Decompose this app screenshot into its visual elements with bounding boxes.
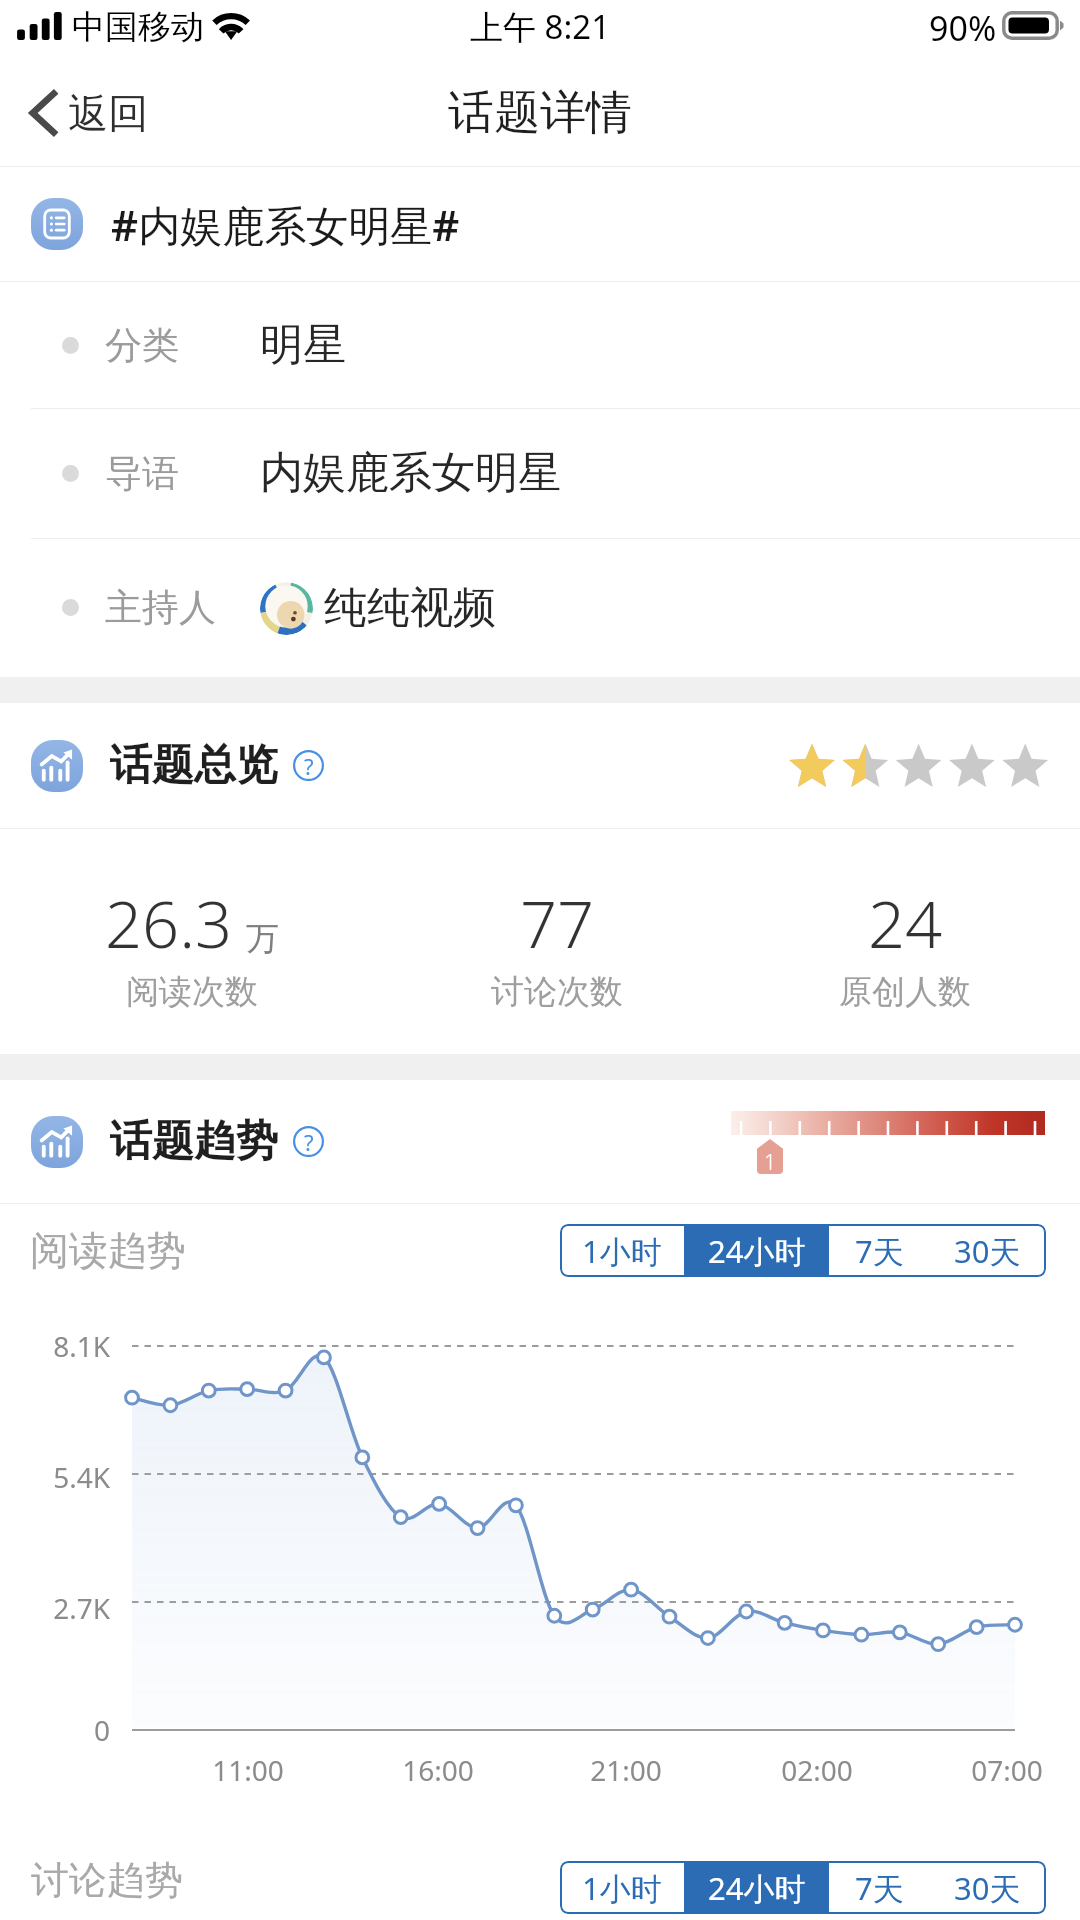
staticText: ? [304, 751, 314, 781]
button[interactable]: 帮助 [293, 1126, 324, 1157]
staticText: #内娱鹿系女明星# [111, 196, 460, 253]
staticText: 26.3 [105, 879, 233, 968]
button[interactable]: 主持人 [0, 538, 1080, 677]
button[interactable]: 1小时 [560, 1224, 684, 1277]
button[interactable]: 纯纯视频 [260, 581, 496, 635]
staticText: 明星 [260, 318, 346, 372]
button[interactable]: 77 [377, 833, 737, 1058]
staticText: 90% [929, 5, 997, 51]
staticText: 内娱鹿系女明星 [260, 446, 561, 500]
button[interactable]: 26.3 [12, 833, 372, 1058]
staticText: 07:00 [971, 1751, 1043, 1789]
button[interactable]: 7天 [829, 1861, 929, 1914]
staticText: 返回 [68, 88, 148, 138]
staticText: 16:00 [402, 1751, 474, 1789]
staticText: 中国移动 [72, 6, 204, 48]
staticText: 1小时 [582, 1867, 662, 1909]
staticText: 2.7K [53, 1589, 110, 1627]
button[interactable]: 7天 [829, 1224, 929, 1277]
staticText: 万 [246, 918, 279, 960]
staticText: ? [304, 1127, 314, 1157]
staticText: 1 [764, 1148, 776, 1174]
staticText: 24小时 [708, 1230, 806, 1272]
staticText: 1小时 [582, 1230, 662, 1272]
staticText: 0 [93, 1711, 110, 1749]
staticText: 导语 [105, 450, 179, 497]
staticText: 讨论趋势 [31, 1856, 183, 1904]
staticText: 77 [520, 879, 595, 968]
button[interactable]: 30天 [929, 1861, 1046, 1914]
staticText: 11:00 [212, 1751, 284, 1789]
button[interactable]: 帮助 [293, 750, 324, 781]
staticText: 30天 [954, 1867, 1021, 1909]
staticText: 话题趋势 [110, 1115, 278, 1168]
staticText: 主持人 [105, 584, 216, 631]
staticText: 分类 [105, 322, 179, 369]
staticText: 5.4K [53, 1458, 110, 1496]
button[interactable]: 返回 [12, 74, 166, 152]
button[interactable]: 分类 [0, 282, 1080, 408]
staticText: 24 [868, 879, 943, 968]
staticText: 8.1K [53, 1327, 110, 1365]
staticText: 24小时 [708, 1867, 806, 1909]
staticText: 上午 8:21 [470, 4, 611, 49]
staticText: 原创人数 [839, 971, 971, 1013]
button[interactable]: 导语 [0, 408, 1080, 538]
staticText: 话题总览 [110, 739, 278, 792]
staticText: 阅读次数 [126, 971, 258, 1013]
staticText: 30天 [954, 1230, 1021, 1272]
button[interactable]: #内娱鹿系女明星# [0, 167, 1080, 281]
staticText: 话题详情 [448, 84, 632, 142]
button[interactable]: 1小时 [560, 1861, 684, 1914]
button[interactable]: 24小时 [684, 1224, 829, 1277]
staticText: 纯纯视频 [324, 581, 496, 635]
button[interactable]: 24小时 [684, 1861, 829, 1914]
staticText: 阅读趋势 [30, 1226, 186, 1275]
staticText: 21:00 [590, 1751, 662, 1789]
staticText: 讨论次数 [491, 971, 623, 1013]
button[interactable]: 24 [725, 833, 1080, 1058]
button[interactable]: 30天 [929, 1224, 1046, 1277]
staticText: 02:00 [781, 1751, 853, 1789]
staticText: 7天 [855, 1867, 904, 1909]
staticText: 7天 [855, 1230, 904, 1272]
